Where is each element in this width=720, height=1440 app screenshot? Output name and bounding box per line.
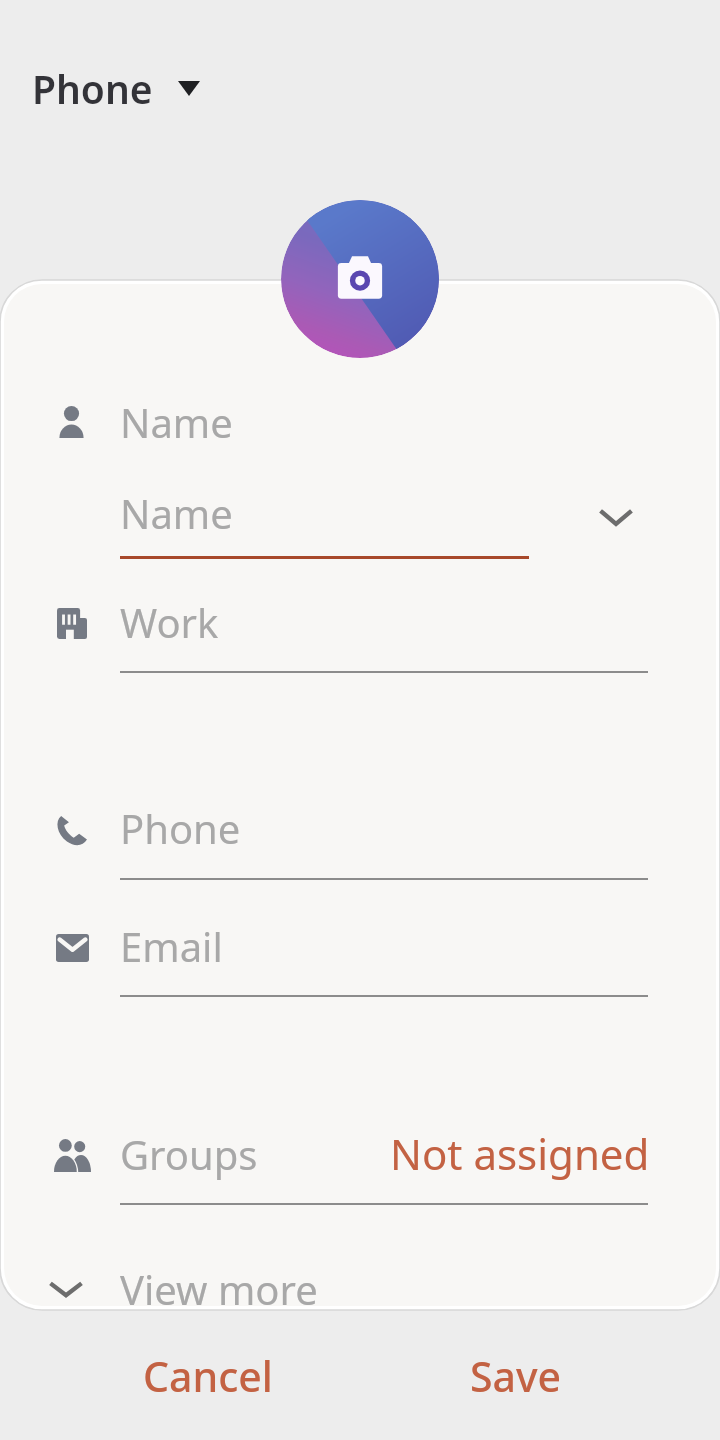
button[interactable] [40, 908, 680, 998]
staticText: Work [120, 595, 219, 649]
button[interactable] [40, 790, 680, 880]
button[interactable]: Save [446, 1334, 586, 1418]
button[interactable] [40, 474, 570, 560]
staticText: Not assigned [390, 1125, 650, 1182]
button[interactable]: Change contact photo [281, 200, 439, 358]
button[interactable] [40, 1116, 680, 1206]
button[interactable] [40, 584, 680, 674]
staticText: Name [120, 395, 233, 449]
button[interactable]: Cancel [119, 1334, 297, 1418]
staticText: View more [120, 1262, 318, 1316]
staticText: Email [120, 919, 223, 973]
button[interactable]: View more [36, 1262, 336, 1316]
staticText: Phone [120, 801, 241, 855]
button[interactable]: Phone [24, 56, 208, 121]
staticText: Groups [120, 1127, 258, 1181]
staticText: Save [470, 1348, 562, 1404]
button[interactable] [40, 382, 680, 462]
staticText: Phone [32, 62, 153, 115]
staticText: Cancel [143, 1348, 273, 1404]
staticText: Name [120, 486, 233, 540]
button[interactable]: Expand name fields [586, 487, 646, 547]
